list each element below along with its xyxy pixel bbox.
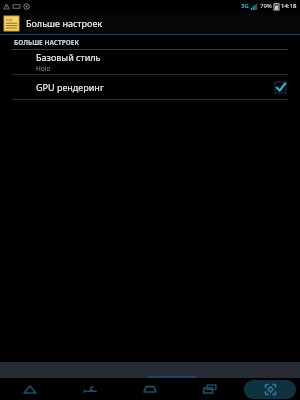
staticText: Базовый стиль (36, 51, 101, 63)
staticText: Holo (36, 64, 51, 73)
button[interactable]: Back (60, 378, 120, 400)
button[interactable]: Full screen (244, 380, 296, 399)
staticText: 14:18 (281, 2, 297, 10)
button[interactable]: Recents (180, 378, 240, 400)
staticText: Больше настроек (26, 17, 103, 29)
other: GPU рендеринг включено (275, 82, 286, 93)
button[interactable]: Collapse (0, 378, 60, 400)
staticText: БОЛЬШЕ НАСТРОЕК (14, 38, 80, 47)
button[interactable]: Home (120, 378, 180, 400)
staticText: 3G (241, 2, 249, 10)
staticText: 79% (260, 2, 272, 10)
staticText: GPU рендеринг (36, 81, 104, 93)
button[interactable]: Больше настроек (0, 12, 300, 34)
button[interactable]: GPU рендеринг (0, 75, 300, 99)
button[interactable]: Базовый стиль (0, 50, 300, 74)
